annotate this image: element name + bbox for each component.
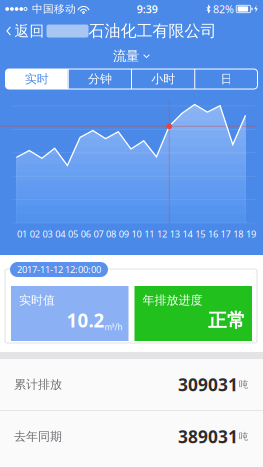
staticText: 10 bbox=[131, 228, 141, 240]
staticText: 吨 bbox=[239, 431, 248, 442]
staticText: 10.2 bbox=[66, 308, 104, 332]
staticText: 14 bbox=[182, 228, 192, 240]
staticText: 06 bbox=[81, 228, 91, 240]
staticText: 9:39 bbox=[137, 2, 158, 16]
staticText: 年排放进度 bbox=[142, 293, 202, 308]
staticText: m³/h bbox=[104, 322, 122, 332]
staticText: 2017-11-12 12:00:00 bbox=[17, 263, 101, 276]
staticText: 12 bbox=[157, 228, 167, 240]
staticText: 11 bbox=[144, 228, 154, 240]
button[interactable]: 实时 bbox=[5, 69, 68, 89]
staticText: 石油化工有限公司 bbox=[88, 21, 216, 41]
staticText: 18 bbox=[233, 228, 243, 240]
staticText: 中国移动 bbox=[32, 2, 76, 15]
staticText: 去年同期 bbox=[14, 429, 62, 444]
staticText: 实时值 bbox=[19, 293, 55, 308]
staticText: 09 bbox=[119, 228, 129, 240]
button[interactable]: 分钟 bbox=[69, 69, 131, 89]
staticText: 13 bbox=[170, 228, 180, 240]
button[interactable]: 小时 bbox=[132, 69, 194, 89]
staticText: 82% bbox=[213, 2, 234, 16]
staticText: 返回 bbox=[14, 22, 44, 40]
button[interactable]: 返回 bbox=[0, 18, 50, 44]
staticText: 小时 bbox=[151, 72, 175, 86]
staticText: 04 bbox=[55, 228, 65, 240]
staticText: 17 bbox=[221, 228, 231, 240]
staticText: 02 bbox=[30, 228, 40, 240]
staticText: 分钟 bbox=[88, 72, 112, 86]
staticText: 累计排放 bbox=[14, 377, 62, 392]
button[interactable]: 累计排放 bbox=[0, 359, 263, 410]
staticText: 01 bbox=[17, 228, 27, 240]
button[interactable]: 日 bbox=[195, 69, 257, 89]
button[interactable]: 去年同期 bbox=[0, 411, 263, 462]
staticText: 吨 bbox=[239, 379, 248, 390]
staticText: 389031 bbox=[178, 425, 238, 448]
staticText: 日 bbox=[220, 72, 232, 86]
staticText: 15 bbox=[195, 228, 205, 240]
staticText: 08 bbox=[106, 228, 116, 240]
staticText: 16 bbox=[208, 228, 218, 240]
staticText: 309031 bbox=[178, 373, 238, 396]
staticText: 07 bbox=[93, 228, 103, 240]
staticText: 流量 bbox=[113, 48, 139, 64]
button[interactable]: 流量 bbox=[113, 44, 150, 68]
staticText: 05 bbox=[68, 228, 78, 240]
staticText: 19 bbox=[246, 228, 256, 240]
staticText: 正常 bbox=[208, 309, 246, 332]
staticText: 实时 bbox=[25, 72, 49, 86]
staticText: 03 bbox=[42, 228, 52, 240]
